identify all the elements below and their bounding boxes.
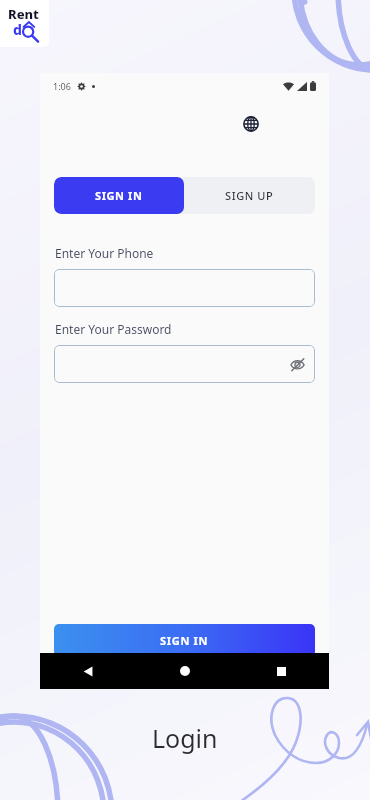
button[interactable] <box>54 269 315 307</box>
button[interactable]: Rentdo logo <box>0 0 49 47</box>
button[interactable]: SIGN IN <box>54 177 184 214</box>
staticText: d <box>13 20 22 39</box>
staticText: Login <box>152 721 218 755</box>
staticText: Don't have an account? Create account <box>91 673 279 687</box>
button[interactable]: Show password <box>54 345 315 383</box>
button[interactable]: SIGN IN <box>54 624 315 657</box>
button[interactable]: Recent apps <box>233 653 329 689</box>
staticText: Rent <box>8 5 39 23</box>
button[interactable]: SIGN UP <box>184 177 315 214</box>
button[interactable]: Show password <box>285 352 309 376</box>
staticText: Enter Your Password <box>55 321 172 337</box>
staticText: Enter Your Phone <box>55 245 154 261</box>
button[interactable]: Don't have an account? Create account <box>40 673 329 687</box>
button[interactable]: Back <box>40 653 137 689</box>
staticText: SIGN IN <box>160 633 209 648</box>
button[interactable]: Home <box>137 653 233 689</box>
staticText: SIGN UP <box>225 188 274 203</box>
staticText: 1:06 <box>53 80 71 92</box>
button[interactable]: Change language <box>238 111 264 137</box>
staticText: SIGN IN <box>95 188 143 203</box>
